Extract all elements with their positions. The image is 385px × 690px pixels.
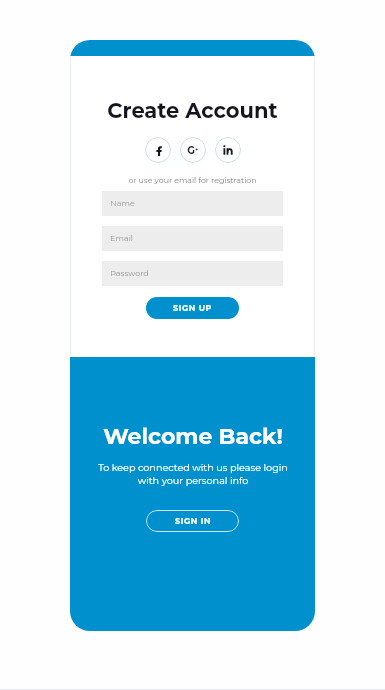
staticText: SIGN IN xyxy=(175,516,211,526)
staticText: or use your email for registration xyxy=(128,175,257,185)
button[interactable]: Sign up with Google xyxy=(180,137,206,163)
staticText: Name xyxy=(110,198,135,208)
button[interactable]: Password xyxy=(102,261,283,286)
staticText: Password xyxy=(110,268,149,278)
staticText: Email xyxy=(110,233,133,243)
button[interactable]: SIGN IN xyxy=(146,510,239,532)
button[interactable]: Name xyxy=(102,191,283,216)
staticText: SIGN UP xyxy=(173,303,212,313)
button[interactable]: Sign up with LinkedIn xyxy=(215,137,241,163)
staticText: Create Account xyxy=(107,98,278,124)
button[interactable]: Sign up with Facebook xyxy=(145,137,171,163)
button[interactable]: Email xyxy=(102,226,283,251)
staticText: To keep connected with us please login w… xyxy=(98,462,288,487)
staticText: Welcome Back! xyxy=(103,423,283,450)
button[interactable]: SIGN UP xyxy=(146,297,239,319)
staticText: G xyxy=(187,144,195,156)
